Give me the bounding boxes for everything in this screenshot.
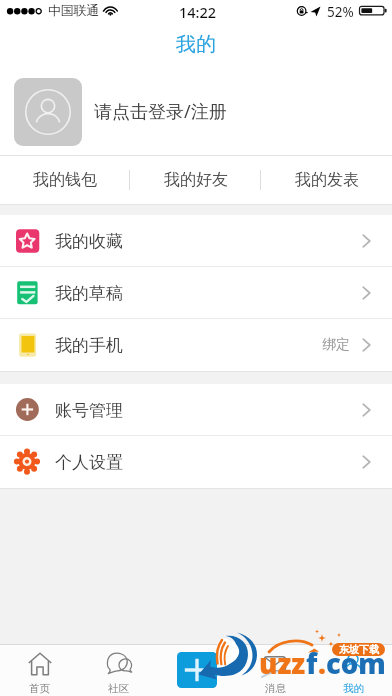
- staticText: uzz: [259, 645, 306, 682]
- button[interactable]: New post: [158, 644, 236, 696]
- button[interactable]: 我的发表: [261, 156, 392, 204]
- staticText: f: [306, 645, 318, 682]
- staticText: 绑定: [322, 336, 350, 354]
- button[interactable]: 我的好友: [130, 156, 261, 204]
- staticText: 我的发表: [295, 170, 359, 190]
- staticText: 我的手机: [55, 335, 123, 356]
- staticText: .: [318, 645, 326, 682]
- staticText: 我的: [176, 32, 216, 57]
- button[interactable]: 社区: [79, 644, 158, 696]
- button[interactable]: 我的草稿: [0, 267, 392, 319]
- button[interactable]: 消息: [236, 644, 314, 696]
- staticText: 14:22: [179, 2, 217, 22]
- button[interactable]: 首页: [0, 644, 79, 696]
- staticText: 中国联通: [48, 3, 100, 19]
- staticText: 我的钱包: [33, 170, 97, 190]
- staticText: 我的: [343, 682, 364, 695]
- staticText: 消息: [265, 682, 286, 695]
- button[interactable]: 我的钱包: [0, 156, 130, 204]
- staticText: com: [326, 645, 386, 682]
- button[interactable]: 我的: [314, 644, 392, 696]
- staticText: 东坡下载: [339, 643, 379, 656]
- button[interactable]: 我的收藏: [0, 215, 392, 267]
- button[interactable]: 我的手机: [0, 319, 392, 371]
- staticText: 个人设置: [55, 452, 123, 473]
- staticText: 我的收藏: [55, 231, 123, 252]
- staticText: 请点击登录/注册: [94, 99, 227, 124]
- staticText: 账号管理: [55, 400, 123, 421]
- button[interactable]: 个人设置: [0, 436, 392, 488]
- button[interactable]: 账号管理: [0, 384, 392, 436]
- staticText: 52%: [327, 3, 354, 21]
- staticText: 首页: [29, 682, 50, 695]
- staticText: 社区: [108, 682, 129, 695]
- staticText: 我的草稿: [55, 283, 123, 304]
- staticText: 我的好友: [164, 170, 228, 190]
- button[interactable]: 请点击登录/注册: [0, 68, 392, 155]
